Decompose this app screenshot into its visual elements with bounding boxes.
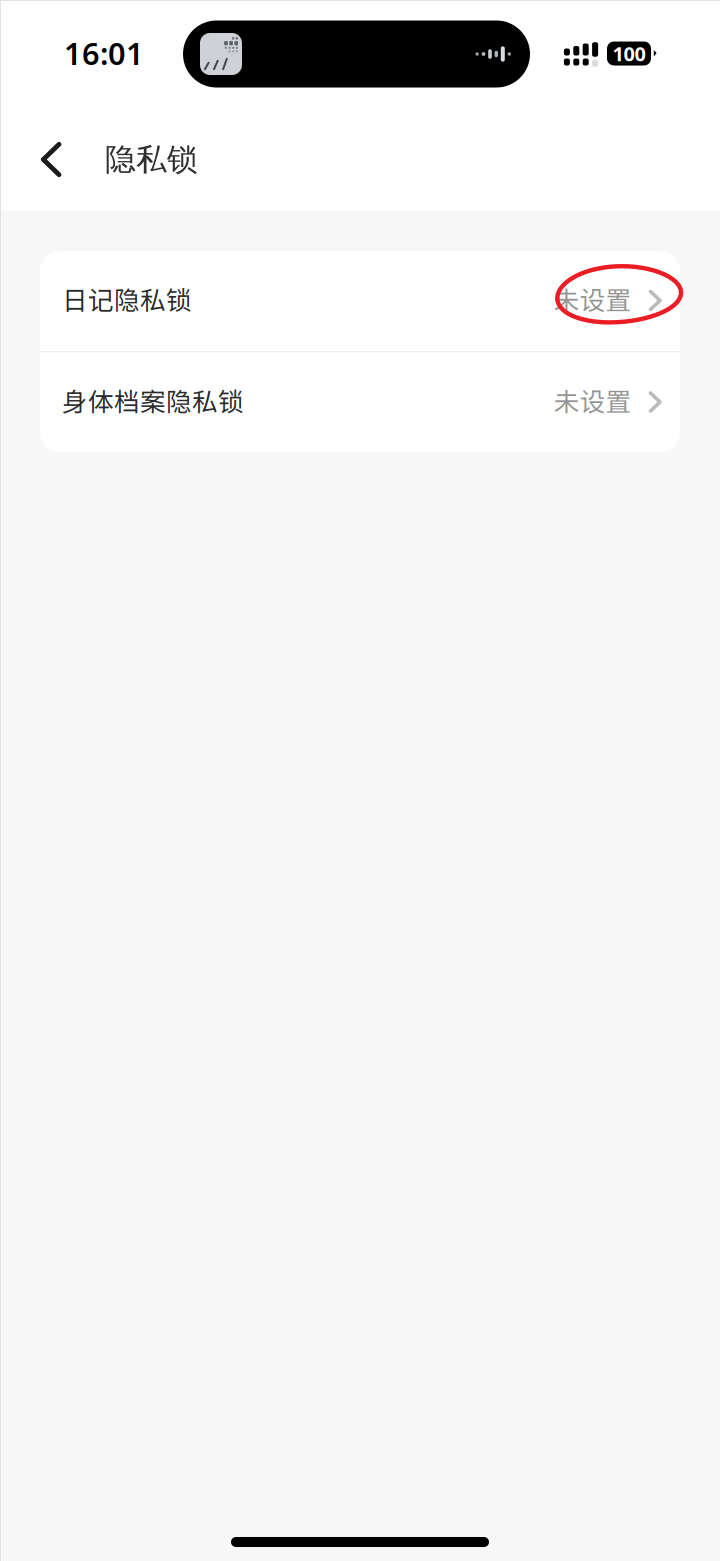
staticText: 未设置 [553,381,631,419]
staticText: 隐私锁 [105,140,198,179]
staticText: 日记隐私锁 [62,280,192,317]
staticText: 身体档案隐私锁 [62,381,244,419]
staticText: 未设置 [553,280,631,317]
staticText: 16:01 [64,33,144,73]
staticText: 100 [612,40,645,67]
button[interactable]: 身体档案隐私锁 [40,352,680,452]
button[interactable]: 日记隐私锁 [40,251,680,351]
button[interactable]: 返回 [0,108,105,211]
